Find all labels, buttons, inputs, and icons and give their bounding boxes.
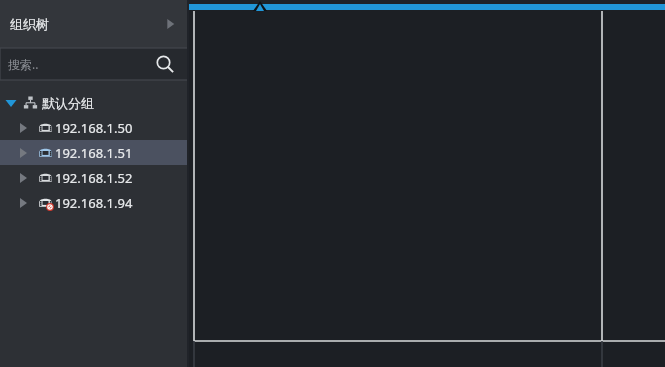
button[interactable]: 搜索..	[0, 48, 188, 80]
staticText: 组织树	[10, 16, 49, 32]
staticText: 192.168.1.94	[55, 194, 133, 212]
button[interactable]: 192.168.1.52	[0, 165, 188, 190]
staticText: 默认分组	[42, 95, 94, 111]
button[interactable]: 组织树	[0, 0, 188, 48]
button[interactable]: 192.168.1.50	[0, 115, 188, 140]
button[interactable]: 192.168.1.94	[0, 190, 188, 215]
staticText: 192.168.1.52	[55, 169, 133, 187]
staticText: 搜索..	[8, 56, 39, 72]
other: Search	[156, 55, 174, 73]
button[interactable]: 默认分组	[0, 90, 188, 115]
staticText: 192.168.1.51	[55, 144, 133, 162]
button[interactable]: 192.168.1.51	[0, 140, 188, 165]
staticText: 192.168.1.50	[55, 119, 133, 137]
